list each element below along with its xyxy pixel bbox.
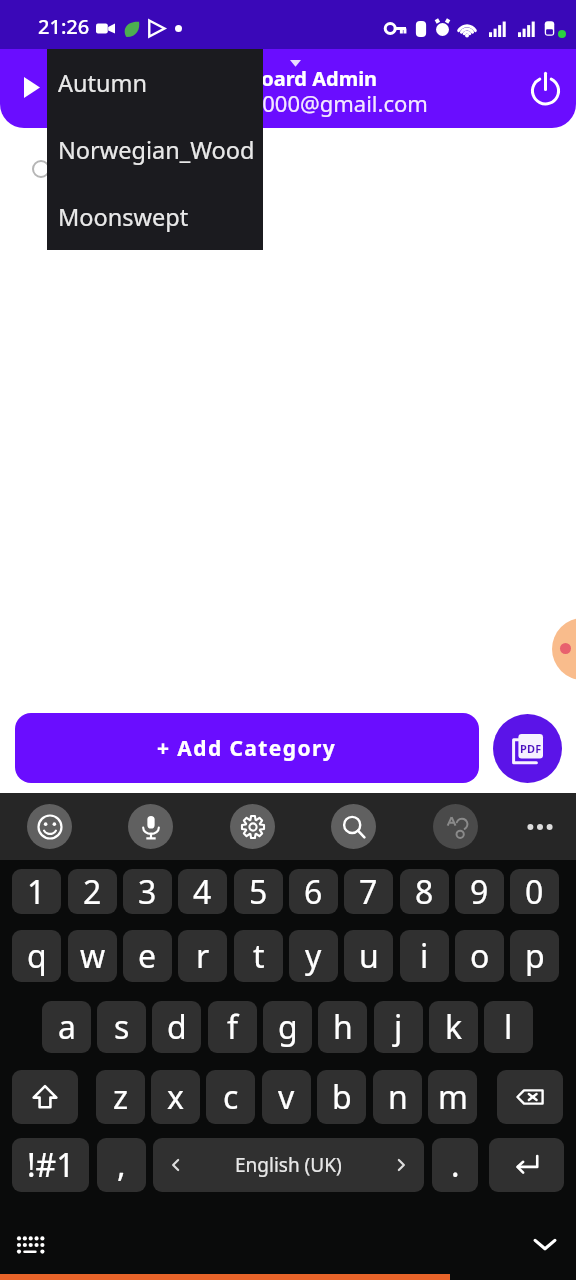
button[interactable]: Autumn [47,60,263,105]
button[interactable]: Profile [552,618,576,680]
button[interactable]: 6 [289,869,338,914]
staticText: u [359,934,379,978]
button[interactable]: m [428,1070,477,1124]
staticText: , [117,1143,126,1187]
button[interactable]: 2 [68,869,117,914]
button[interactable]: e [123,930,172,982]
button[interactable]: More options [518,805,562,849]
button[interactable]: u [344,930,393,982]
button[interactable]: , [97,1138,146,1192]
staticText: 1 [27,870,46,914]
staticText: k [445,1005,463,1049]
staticText: o [470,934,490,978]
button[interactable]: x [151,1070,200,1124]
staticText: . [451,1143,460,1187]
staticText: 0 [525,870,544,914]
staticText: English (UK) [235,1152,342,1178]
button[interactable]: b [317,1070,366,1124]
button[interactable]: q [12,930,61,982]
staticText: y [305,934,322,978]
staticText: n [388,1075,408,1119]
staticText: Moonswept [58,201,189,233]
button[interactable]: 3 [123,869,172,914]
button[interactable]: + Add Category [15,713,479,783]
button[interactable]: i [400,930,449,982]
button[interactable]: n [373,1070,422,1124]
button[interactable]: c [206,1070,255,1124]
staticText: + Add Category [157,734,337,763]
button[interactable]: Voice input [128,804,173,849]
button[interactable]: . [432,1138,478,1192]
staticText: 7 [359,870,378,914]
button[interactable]: backspace [497,1070,563,1124]
staticText: r [196,934,210,978]
button[interactable]: y [289,930,338,982]
button[interactable]: k [429,1001,478,1053]
button[interactable]: Switch keyboard [13,1227,49,1263]
staticText: h [333,1005,353,1049]
button[interactable]: 5 [234,869,283,914]
staticText: i [420,934,429,978]
staticText: t [253,934,265,978]
button[interactable]: Norwegian_Wood [47,127,263,172]
button[interactable]: 7 [344,869,393,914]
staticText: q [27,934,47,978]
staticText: PDF [520,741,542,756]
staticText: !#1 [27,1143,75,1187]
button[interactable]: Translate [433,804,478,849]
staticText: user2000@gmail.com [204,88,428,118]
staticText: m [438,1075,468,1119]
staticText: w [80,934,106,978]
staticText: s [114,1005,130,1049]
staticText: x [167,1075,184,1119]
staticText: b [332,1075,352,1119]
staticText: p [525,934,545,978]
button[interactable]: g [263,1001,312,1053]
staticText: Dashboard Admin [199,65,378,92]
button[interactable]: v [262,1070,311,1124]
button[interactable]: Emoji [27,804,72,849]
button[interactable]: p [510,930,559,982]
staticText: d [167,1005,187,1049]
staticText: j [394,1005,403,1049]
button[interactable]: enter [489,1138,564,1192]
button[interactable]: a [42,1001,91,1053]
button[interactable]: Hide keyboard [526,1225,564,1263]
button[interactable]: Logout [522,65,568,111]
staticText: 5 [249,870,268,914]
button[interactable]: z [96,1070,145,1124]
button[interactable]: space [153,1138,424,1192]
button[interactable]: Settings [230,804,275,849]
button[interactable]: w [68,930,117,982]
button[interactable]: Export PDF [493,714,562,783]
button[interactable]: 1 [12,869,61,914]
button[interactable]: shift [12,1070,78,1124]
staticText: Autumn [58,67,148,99]
staticText: f [227,1005,239,1049]
button[interactable]: Search [331,804,376,849]
staticText: 9 [470,870,489,914]
staticText: 4 [193,870,212,914]
button[interactable]: t [234,930,283,982]
button[interactable]: d [152,1001,201,1053]
button[interactable]: Menu [10,67,54,111]
staticText: a [58,1005,76,1049]
button[interactable]: l [484,1001,533,1053]
button[interactable]: 4 [178,869,227,914]
staticText: l [504,1005,513,1049]
staticText: 8 [415,870,434,914]
button[interactable]: o [455,930,504,982]
button[interactable]: 8 [400,869,449,914]
staticText: v [278,1075,295,1119]
button[interactable]: f [208,1001,257,1053]
staticText: e [138,934,157,978]
button[interactable]: r [178,930,227,982]
button[interactable]: 9 [455,869,504,914]
staticText: z [113,1075,129,1119]
button[interactable]: h [318,1001,367,1053]
button[interactable]: Moonswept [47,194,263,239]
button[interactable]: !#1 [12,1138,89,1192]
button[interactable]: 0 [510,869,559,914]
button[interactable]: j [374,1001,423,1053]
button[interactable]: s [97,1001,146,1053]
